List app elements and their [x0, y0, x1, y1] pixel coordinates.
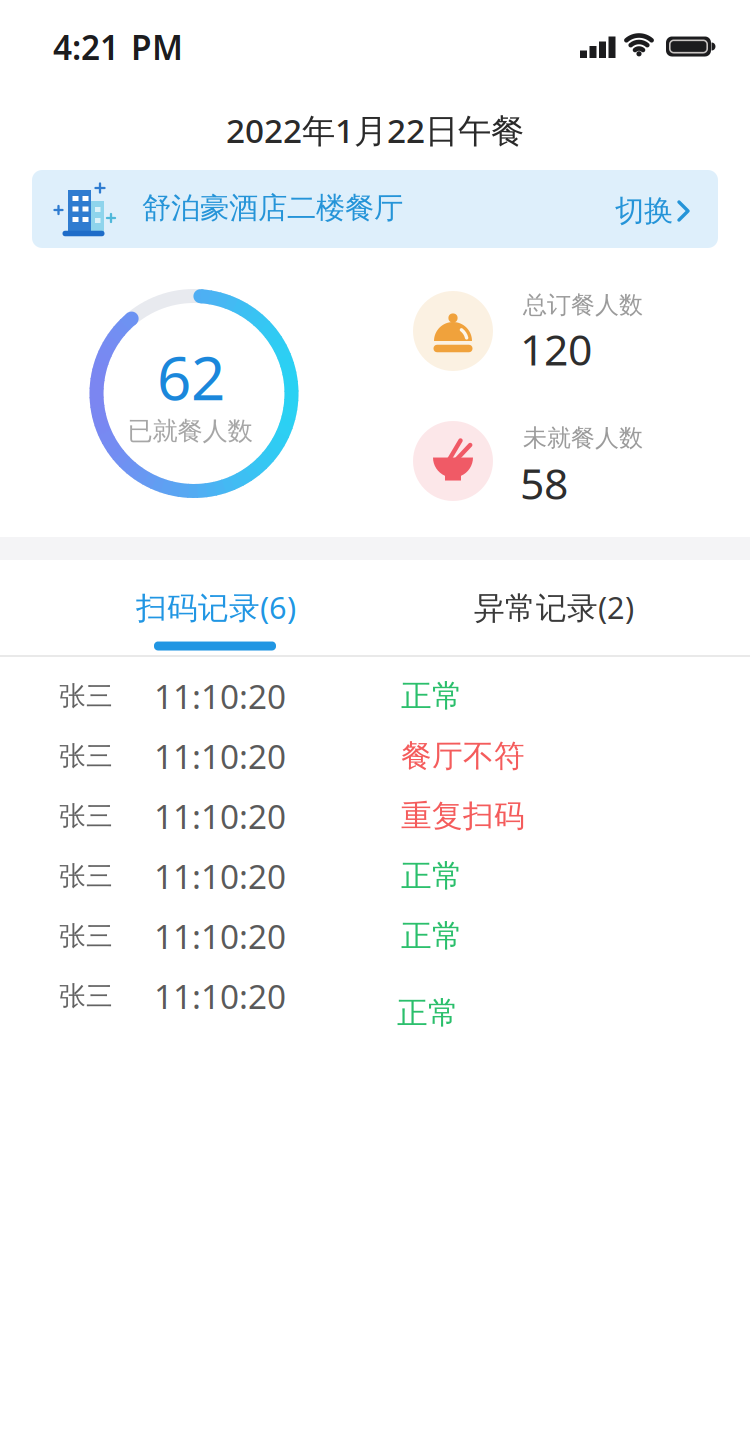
staticText: 11:10:20 [154, 794, 286, 838]
staticText: 餐厅不符 [401, 737, 525, 775]
staticText: 张三 [59, 860, 113, 892]
staticText: 张三 [59, 980, 113, 1012]
staticText: PM [131, 25, 183, 69]
staticText: 11:10:20 [154, 914, 286, 958]
button[interactable]: 扫码记录(6) [76, 572, 356, 642]
staticText: 58 [520, 455, 568, 511]
staticText: 异常记录(2) [474, 587, 634, 627]
button[interactable]: 异常记录(2) [414, 572, 694, 642]
staticText: 张三 [59, 920, 113, 952]
button[interactable]: 舒泊豪酒店二楼餐厅 [32, 170, 718, 248]
staticText: 已就餐人数 [127, 415, 252, 446]
staticText: 正常 [401, 857, 463, 895]
staticText: 舒泊豪酒店二楼餐厅 [142, 190, 403, 226]
staticText: 正常 [401, 677, 463, 715]
staticText: 总订餐人数 [523, 290, 643, 320]
staticText: 2022年1月22日午餐 [226, 108, 524, 152]
staticText: 未就餐人数 [523, 423, 643, 453]
staticText: 4:21 [53, 25, 119, 69]
staticText: 62 [157, 337, 225, 417]
staticText: 11:10:20 [154, 974, 286, 1018]
staticText: 张三 [59, 740, 113, 772]
staticText: 张三 [59, 800, 113, 832]
staticText: 11:10:20 [154, 674, 286, 718]
staticText: 正常 [397, 994, 459, 1032]
staticText: 11:10:20 [154, 854, 286, 898]
staticText: 重复扫码 [401, 797, 525, 835]
staticText: 120 [520, 321, 592, 377]
staticText: 扫码记录(6) [136, 587, 296, 627]
staticText: 正常 [401, 917, 463, 955]
staticText: 切换 [615, 193, 673, 229]
staticText: 张三 [59, 680, 113, 712]
staticText: 11:10:20 [154, 734, 286, 778]
